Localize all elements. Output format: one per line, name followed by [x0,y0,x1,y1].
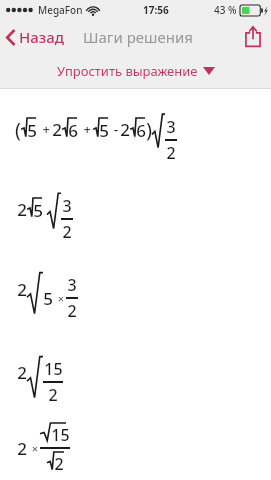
staticText: 3 [166,116,176,138]
button[interactable]: 2 [0,329,271,414]
staticText: + [37,120,52,138]
staticText: 2 [17,198,27,221]
staticText: 2 [62,221,72,243]
staticText: Шаги решения [83,27,193,47]
staticText: Назад [19,27,64,47]
staticText: 2 [52,118,62,141]
staticText: 6 [68,119,78,142]
staticText: MegaFon [38,3,83,17]
staticText: 6 [136,119,146,142]
button[interactable]: 2 [0,414,271,480]
staticText: × [53,291,66,306]
button[interactable]: ( [0,89,271,169]
staticText: × [27,441,40,456]
staticText: 2 [54,453,64,475]
staticText: Упростить выражение [57,62,198,80]
staticText: 2 [17,278,27,301]
staticText: 3 [67,274,77,296]
button[interactable]: Назад [0,24,68,50]
staticText: 2 [17,361,27,384]
staticText: 5 [43,287,53,310]
staticText: 5 [99,119,109,142]
staticText: ( [15,116,21,143]
staticText: 5 [27,119,37,142]
staticText: 15 [51,424,70,446]
button[interactable]: Share [235,22,271,51]
button[interactable]: Упростить выражение [45,57,227,85]
staticText: ) [146,116,152,143]
staticText: 2 [67,300,77,322]
staticText: 15 [44,358,63,380]
staticText: 2 [166,142,176,164]
staticText: 2 [48,384,58,406]
staticText: 2 [120,118,130,141]
button[interactable]: 2 [0,249,271,329]
staticText: 17:56 [143,3,169,17]
staticText: 2 [17,437,27,460]
staticText: 43 % [214,3,237,17]
staticText: + [78,120,93,138]
staticText: 3 [62,195,72,217]
staticText: - [109,120,120,138]
button[interactable]: 2 [0,169,271,249]
staticText: 5 [33,199,43,222]
